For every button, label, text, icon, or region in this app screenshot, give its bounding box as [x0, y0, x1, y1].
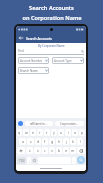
button[interactable]: a — [19, 138, 26, 145]
button[interactable]: t — [44, 129, 50, 136]
staticText: l — [80, 139, 81, 144]
staticText: affiliated m... — [30, 122, 48, 126]
button[interactable]: p — [79, 129, 85, 136]
staticText: j — [66, 139, 67, 144]
button[interactable]: q — [17, 129, 22, 136]
staticText: m — [71, 148, 75, 153]
staticText: x — [37, 148, 39, 153]
other: Search — [81, 50, 84, 53]
button[interactable]: z — [26, 147, 33, 154]
staticText: g — [51, 139, 54, 144]
staticText: . — [74, 158, 75, 163]
staticText: s — [30, 139, 32, 144]
staticText: y — [53, 130, 55, 135]
staticText: o — [74, 130, 77, 135]
staticText: e — [32, 130, 34, 135]
staticText: Account Type — [54, 59, 72, 63]
staticText: Search Accounts — [26, 36, 52, 40]
staticText: w — [25, 130, 28, 135]
button[interactable]: Search — [77, 156, 85, 164]
staticText: i — [68, 130, 69, 135]
staticText: h — [58, 139, 61, 144]
button[interactable]: d — [35, 138, 41, 145]
staticText: q — [18, 130, 21, 135]
staticText: p — [81, 130, 84, 135]
button[interactable]: m — [70, 147, 76, 154]
button[interactable]: Account Number — [18, 57, 49, 64]
button[interactable]: s — [27, 138, 34, 145]
staticText: v — [51, 148, 53, 153]
staticText: b — [58, 148, 61, 153]
button[interactable]: Delete — [77, 147, 85, 154]
staticText: , — [29, 158, 30, 163]
button[interactable]: Branch Name — [18, 67, 49, 74]
staticText: k — [72, 139, 74, 144]
button[interactable]: h — [56, 138, 62, 145]
staticText: t — [46, 130, 48, 135]
staticText: z — [29, 148, 31, 153]
staticText: Branch Name — [20, 69, 38, 73]
button[interactable]: affiliated m... — [25, 121, 53, 126]
button[interactable]: Account Type — [52, 57, 84, 64]
staticText: By Corporate Name — [38, 44, 65, 48]
button[interactable]: b — [56, 147, 62, 154]
staticText: f — [44, 139, 46, 144]
button[interactable]: Corporation... — [55, 121, 84, 126]
staticText: ?123 — [19, 159, 25, 163]
button[interactable]: l — [77, 138, 83, 145]
button[interactable]: k — [70, 138, 76, 145]
button[interactable]: e — [30, 129, 36, 136]
staticText: Corporation... — [60, 122, 79, 126]
staticText: d — [37, 139, 40, 144]
button[interactable]: y — [51, 129, 57, 136]
button[interactable]: w — [23, 129, 29, 136]
button[interactable]: f — [42, 138, 48, 145]
button[interactable]: , — [27, 157, 31, 164]
button[interactable]: ?123 — [17, 157, 26, 164]
button[interactable]: j — [63, 138, 69, 145]
button[interactable]: . — [72, 157, 76, 164]
staticText: Account Number — [20, 59, 43, 63]
button[interactable]: g — [49, 138, 55, 145]
button[interactable]: Google — [18, 121, 23, 126]
button[interactable]: i — [65, 129, 71, 136]
staticText: Find — [18, 49, 24, 53]
button[interactable]: o — [72, 129, 78, 136]
button[interactable]: r — [37, 129, 43, 136]
staticText: on Corporation Name — [22, 14, 82, 22]
staticText: u — [60, 130, 63, 135]
button[interactable]: Emoji — [32, 158, 37, 163]
staticText: r — [39, 130, 41, 135]
staticText: a — [22, 139, 24, 144]
button[interactable]: u — [58, 129, 64, 136]
button[interactable]: n — [63, 147, 69, 154]
staticText: n — [65, 148, 68, 153]
staticText: c — [44, 148, 46, 153]
button[interactable]: c — [42, 147, 48, 154]
button[interactable]: Back — [18, 35, 24, 41]
button[interactable]: x — [34, 147, 41, 154]
staticText: Search Accounts — [29, 4, 74, 12]
button[interactable]: v — [49, 147, 55, 154]
button[interactable]: Shift — [17, 147, 25, 154]
